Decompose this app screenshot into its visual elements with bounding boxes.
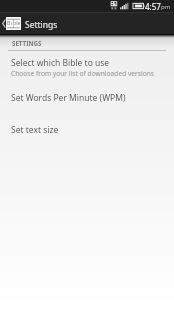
staticText: pm — [161, 3, 171, 11]
staticText: SETTINGS — [12, 39, 42, 47]
button[interactable]: Set text size — [0, 120, 174, 152]
staticText: B — [7, 20, 11, 27]
button[interactable]: Select which Bible to use — [0, 52, 174, 88]
staticText: Set text size — [11, 124, 59, 136]
staticText: Settings — [25, 19, 58, 31]
staticText: Set Words Per Minute (WPM) — [11, 92, 126, 104]
staticText: Select which Bible to use — [11, 57, 110, 69]
staticText: Choose from your list of downloaded vers… — [11, 69, 155, 78]
button[interactable]: Navigate up — [0, 13, 6, 34]
button[interactable]: Set Words Per Minute (WPM) — [0, 88, 174, 120]
staticText: 4:57 — [145, 1, 161, 12]
staticText: ble — [13, 20, 21, 27]
staticText: i — [11, 20, 13, 27]
